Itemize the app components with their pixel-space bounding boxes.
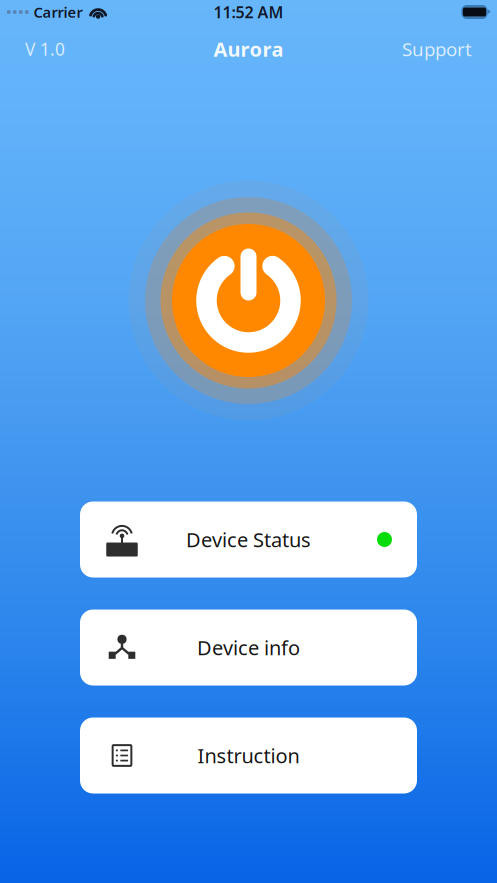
- button[interactable]: Power: [124, 176, 372, 424]
- button[interactable]: Device info: [80, 609, 417, 685]
- staticText: V 1.0: [25, 37, 65, 60]
- staticText: Aurora: [213, 36, 283, 62]
- staticText: Carrier: [34, 2, 83, 22]
- staticText: Device Status: [186, 526, 311, 553]
- button[interactable]: Support: [398, 31, 476, 67]
- button[interactable]: Instruction: [80, 717, 417, 793]
- staticText: Support: [402, 37, 472, 61]
- button[interactable]: Device Status: [80, 501, 417, 577]
- staticText: 11:52 AM: [213, 1, 283, 23]
- staticText: Instruction: [197, 742, 299, 769]
- button[interactable]: V 1.0: [21, 31, 69, 66]
- staticText: Device info: [197, 634, 300, 661]
